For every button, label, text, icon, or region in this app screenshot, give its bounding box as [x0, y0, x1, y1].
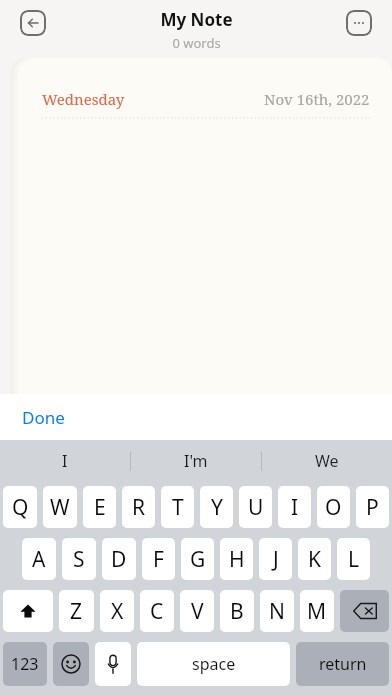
- staticText: I: [291, 493, 299, 522]
- button[interactable]: Emoji: [53, 642, 89, 686]
- staticText: U: [248, 493, 264, 522]
- staticText: W: [50, 493, 70, 522]
- staticText: 0 words: [172, 34, 221, 52]
- staticText: D: [111, 545, 127, 574]
- staticText: C: [150, 597, 164, 626]
- staticText: Nov 16th, 2022: [264, 89, 370, 109]
- staticText: J: [273, 545, 279, 574]
- staticText: A: [32, 545, 46, 574]
- staticText: I'm: [184, 450, 208, 472]
- staticText: We: [315, 450, 339, 472]
- staticText: My Note: [160, 8, 233, 31]
- button[interactable]: B: [220, 590, 254, 632]
- button[interactable]: C: [140, 590, 174, 632]
- button[interactable]: X: [100, 590, 134, 632]
- staticText: K: [308, 545, 321, 574]
- staticText: Q: [12, 493, 29, 522]
- button[interactable]: space: [137, 642, 290, 686]
- staticText: 123: [11, 653, 39, 675]
- staticText: space: [192, 653, 236, 675]
- staticText: Y: [211, 493, 223, 522]
- button[interactable]: return: [296, 642, 389, 686]
- button[interactable]: Backspace: [340, 590, 389, 632]
- button[interactable]: S: [62, 538, 96, 580]
- staticText: N: [269, 597, 285, 626]
- staticText: Wednesday: [42, 89, 125, 109]
- button[interactable]: T: [161, 486, 194, 528]
- staticText: R: [132, 493, 146, 522]
- staticText: Z: [70, 597, 83, 626]
- staticText: S: [73, 545, 85, 574]
- button[interactable]: Z: [59, 590, 94, 632]
- staticText: I: [62, 450, 68, 472]
- button[interactable]: U: [239, 486, 272, 528]
- button[interactable]: P: [356, 486, 389, 528]
- button[interactable]: L: [337, 538, 370, 580]
- button[interactable]: W: [43, 486, 77, 528]
- staticText: L: [348, 545, 360, 574]
- staticText: P: [366, 493, 379, 522]
- button[interactable]: Back: [20, 10, 46, 36]
- button[interactable]: Shift: [3, 590, 53, 632]
- staticText: F: [153, 545, 164, 574]
- staticText: E: [94, 493, 106, 522]
- button[interactable]: R: [122, 486, 155, 528]
- button[interactable]: V: [180, 590, 214, 632]
- button[interactable]: G: [181, 538, 214, 580]
- staticText: O: [325, 493, 342, 522]
- button[interactable]: Voice input: [95, 642, 131, 686]
- button[interactable]: Y: [200, 486, 233, 528]
- staticText: Done: [22, 406, 65, 429]
- staticText: G: [190, 545, 206, 574]
- button[interactable]: M: [300, 590, 334, 632]
- staticText: M: [307, 597, 327, 626]
- button[interactable]: We: [262, 440, 392, 482]
- button[interactable]: Q: [3, 486, 37, 528]
- button[interactable]: D: [102, 538, 136, 580]
- button[interactable]: More options: [346, 10, 372, 36]
- button[interactable]: I'm: [131, 440, 261, 482]
- button[interactable]: 123: [3, 642, 47, 686]
- staticText: H: [229, 545, 245, 574]
- button[interactable]: H: [220, 538, 253, 580]
- staticText: X: [111, 597, 124, 626]
- button[interactable]: F: [142, 538, 175, 580]
- button[interactable]: I: [278, 486, 311, 528]
- button[interactable]: Wednesday: [18, 58, 392, 394]
- button[interactable]: A: [22, 538, 56, 580]
- staticText: B: [230, 597, 244, 626]
- button[interactable]: O: [317, 486, 350, 528]
- button[interactable]: K: [298, 538, 331, 580]
- button[interactable]: Done: [12, 400, 75, 435]
- staticText: V: [191, 597, 204, 626]
- button[interactable]: J: [259, 538, 292, 580]
- staticText: T: [172, 493, 184, 522]
- button[interactable]: I: [0, 440, 130, 482]
- button[interactable]: N: [260, 590, 294, 632]
- button[interactable]: E: [83, 486, 116, 528]
- staticText: return: [319, 653, 367, 675]
